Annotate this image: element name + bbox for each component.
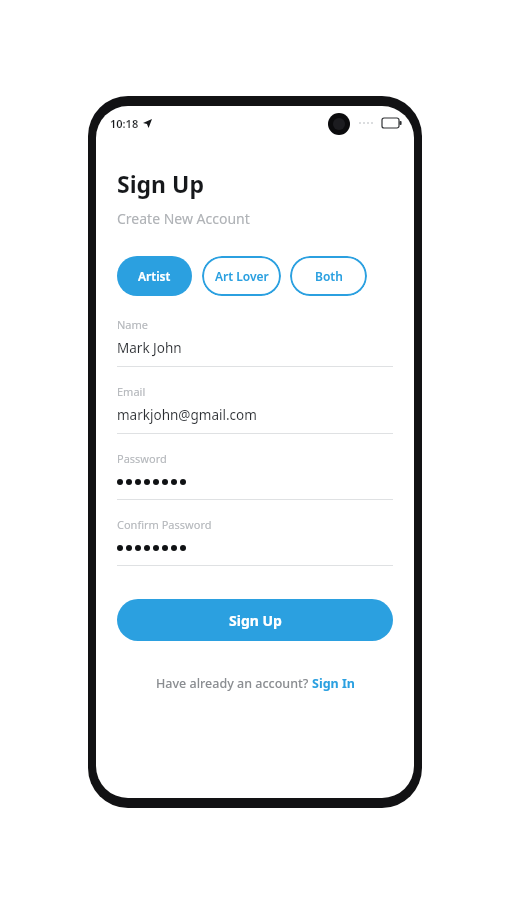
staticText: Email: [117, 384, 146, 399]
staticText: 10:18: [110, 116, 139, 131]
staticText: markjohn@gmail.com: [117, 406, 257, 424]
staticText: Mark John: [117, 339, 182, 357]
button[interactable]: Art Lover: [202, 256, 281, 296]
staticText: Both: [315, 268, 343, 284]
staticText: Artist: [138, 268, 171, 284]
button[interactable]: Name: [117, 317, 393, 367]
staticText: Have already an account?: [156, 675, 312, 692]
button[interactable]: Confirm Password: [117, 517, 393, 566]
staticText: Sign Up: [117, 168, 204, 199]
button[interactable]: Password: [117, 451, 393, 500]
button[interactable]: Sign Up: [117, 599, 393, 641]
staticText: Sign In: [312, 675, 355, 692]
staticText: Sign Up: [229, 611, 282, 630]
button[interactable]: Both: [290, 256, 367, 296]
staticText: Create New Account: [117, 209, 250, 228]
button[interactable]: Email: [117, 384, 393, 434]
staticText: Password: [117, 451, 167, 466]
button[interactable]: Artist: [117, 256, 192, 296]
staticText: Confirm Password: [117, 517, 212, 532]
staticText: Name: [117, 317, 149, 332]
button[interactable]: Sign In: [312, 675, 355, 692]
staticText: Art Lover: [215, 268, 269, 284]
